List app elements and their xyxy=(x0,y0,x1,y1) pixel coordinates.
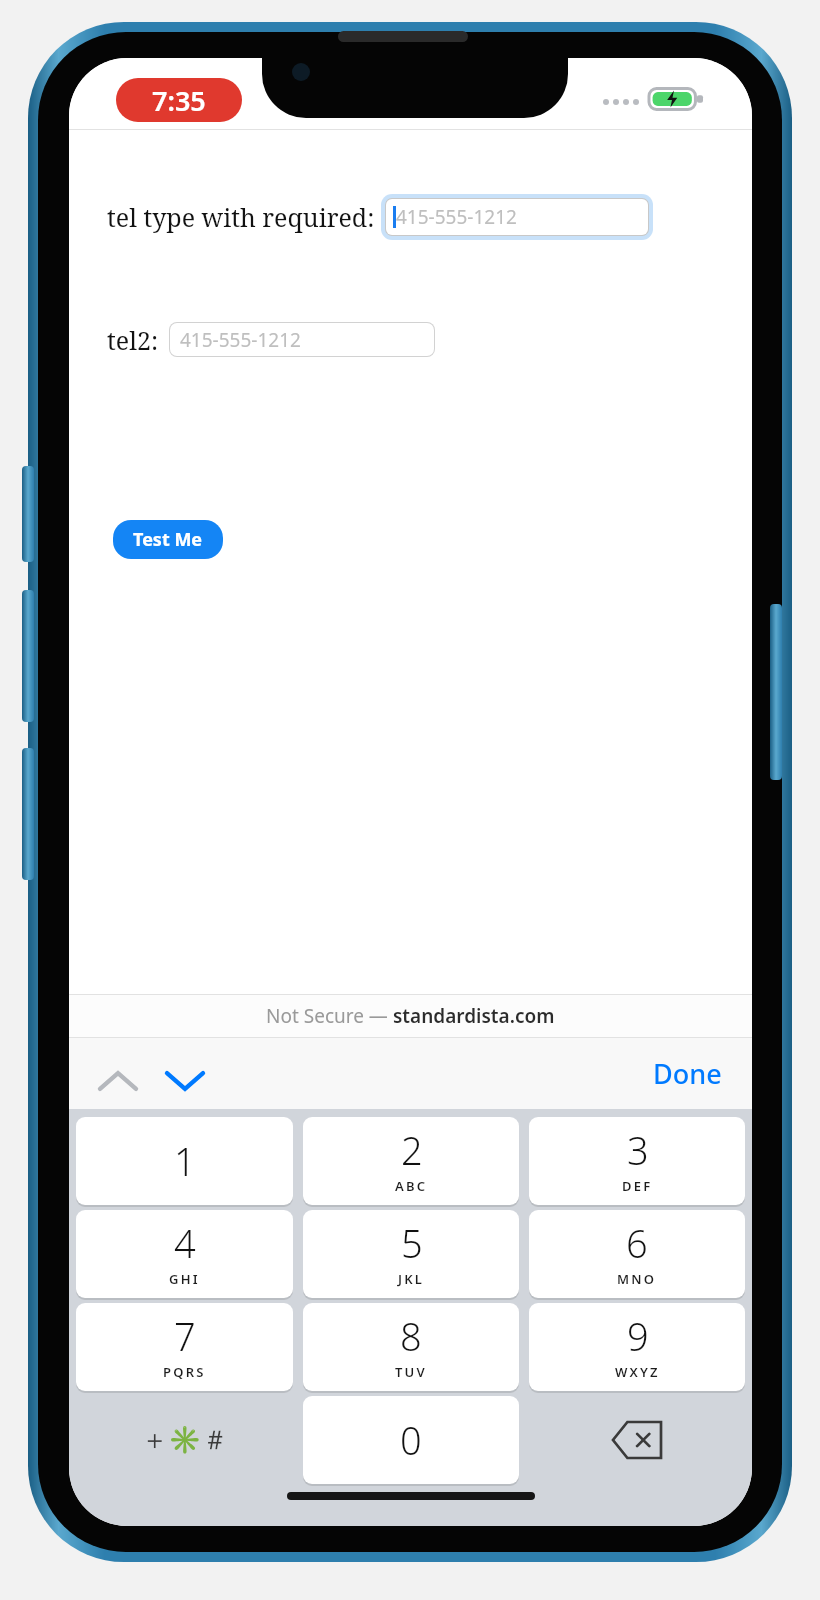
staticText: 1 xyxy=(174,1135,196,1187)
staticText: 2 xyxy=(401,1124,423,1176)
staticText: 0 xyxy=(400,1414,422,1466)
button[interactable]: 1 xyxy=(76,1117,293,1205)
button[interactable]: 6 xyxy=(529,1210,745,1298)
button[interactable]: 415-555-1212 xyxy=(170,323,434,356)
button[interactable]: 0 xyxy=(303,1396,519,1484)
staticText: 3 xyxy=(627,1124,649,1176)
staticText: 7:35 xyxy=(152,82,206,119)
staticText: JKL xyxy=(398,1270,425,1288)
staticText: 9 xyxy=(627,1310,649,1362)
button[interactable]: 7 xyxy=(76,1303,293,1391)
button[interactable]: 7:35 xyxy=(116,78,242,122)
button[interactable]: 3 xyxy=(529,1117,745,1205)
staticText: WXYZ xyxy=(615,1363,660,1381)
button[interactable]: Next field xyxy=(156,1052,214,1110)
button[interactable]: 9 xyxy=(529,1303,745,1391)
button[interactable]: 5 xyxy=(303,1210,519,1298)
staticText: Not Secure — xyxy=(266,1003,393,1029)
other: Battery charging xyxy=(649,84,703,114)
staticText: Done xyxy=(653,1055,722,1092)
staticText: 8 xyxy=(400,1310,422,1362)
staticText: MNO xyxy=(617,1270,657,1288)
staticText: 4 xyxy=(174,1217,196,1269)
button[interactable]: Delete xyxy=(529,1396,745,1484)
button[interactable]: 4 xyxy=(76,1210,293,1298)
staticText: 415-555-1212 xyxy=(396,204,517,230)
staticText: standardista.com xyxy=(393,1003,555,1029)
staticText: Test Me xyxy=(133,527,203,552)
staticText: 6 xyxy=(626,1217,648,1269)
staticText: 5 xyxy=(401,1217,423,1269)
staticText: DEF xyxy=(622,1177,653,1195)
button[interactable]: ＋✳︎＃ xyxy=(76,1396,293,1484)
staticText: 7 xyxy=(174,1310,196,1362)
button[interactable]: 2 xyxy=(303,1117,519,1205)
staticText: tel2: xyxy=(107,323,159,357)
staticText: ABC xyxy=(395,1177,428,1195)
staticText: PQRS xyxy=(163,1363,206,1381)
staticText: ＋✳︎＃ xyxy=(141,1423,229,1457)
button[interactable]: Done xyxy=(645,1049,730,1098)
staticText: TUV xyxy=(395,1363,427,1381)
button[interactable]: Previous field xyxy=(89,1052,147,1110)
button[interactable]: Not Secure — xyxy=(254,999,567,1033)
staticText: GHI xyxy=(169,1270,200,1288)
button[interactable]: 415-555-1212 xyxy=(386,199,648,235)
staticText: 415-555-1212 xyxy=(180,327,301,353)
staticText: tel type with required: xyxy=(107,200,375,234)
button[interactable]: 8 xyxy=(303,1303,519,1391)
button[interactable]: Test Me xyxy=(113,520,223,559)
